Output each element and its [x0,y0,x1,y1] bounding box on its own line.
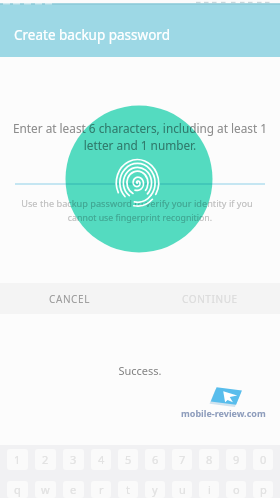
button[interactable]: t [118,481,138,498]
button[interactable]: 7 [172,449,192,470]
staticText: p [260,482,267,497]
button[interactable]: w [35,481,56,498]
button[interactable]: q [7,481,28,498]
staticText: 6 [152,452,159,467]
button[interactable]: 1 [7,449,28,470]
staticText: y [152,482,158,497]
button[interactable]: CONTINUE [140,283,280,314]
staticText: i [208,482,211,497]
staticText: 4 [98,452,105,467]
button[interactable]: 6 [145,449,165,470]
staticText: 1 [14,452,21,467]
staticText: r [99,482,104,497]
staticText: Enter at least 6 characters, including a… [0,120,280,136]
button[interactable]: p [253,481,273,498]
staticText: e [70,482,77,497]
other: Fingerprint [119,148,160,200]
staticText: cannot use fingerprint recognition. [0,212,280,224]
button[interactable]: u [172,481,192,498]
button[interactable]: i [199,481,219,498]
staticText: q [14,482,21,497]
staticText: 2 [42,452,49,467]
staticText: 0 [260,452,267,467]
button[interactable]: 4 [91,449,111,470]
staticText: 9 [233,452,240,467]
button[interactable]: o [226,481,246,498]
staticText: CANCEL [49,292,91,306]
button[interactable]: r [91,481,111,498]
button[interactable]: CANCEL [0,283,140,314]
staticText: Use the backup password to verify your i… [0,197,277,210]
staticText: t [126,482,130,497]
staticText: letter and 1 number. [0,137,280,153]
staticText: o [233,482,240,497]
staticText: 5 [125,452,132,467]
staticText: w [41,482,50,497]
staticText: Create backup password [14,26,170,44]
button[interactable]: 2 [35,449,56,470]
staticText: 3 [70,452,77,467]
staticText: CONTINUE [182,292,238,306]
staticText: 8 [206,452,213,467]
staticText: 7 [179,452,186,467]
staticText: mobile-review.com [181,407,266,419]
button[interactable]: 5 [118,449,138,470]
button[interactable]: 8 [199,449,219,470]
button[interactable]: e [63,481,84,498]
button[interactable]: y [145,481,165,498]
button[interactable]: 9 [226,449,246,470]
button[interactable]: 0 [253,449,273,470]
staticText: Success. [0,363,280,378]
button[interactable]: 3 [63,449,84,470]
staticText: u [179,482,186,497]
